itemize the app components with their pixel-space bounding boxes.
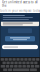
button[interactable] [5, 36, 35, 41]
staticText: Get unlimited access to all the [2, 0, 38, 8]
staticText: tools in your workspace today [0, 9, 40, 12]
